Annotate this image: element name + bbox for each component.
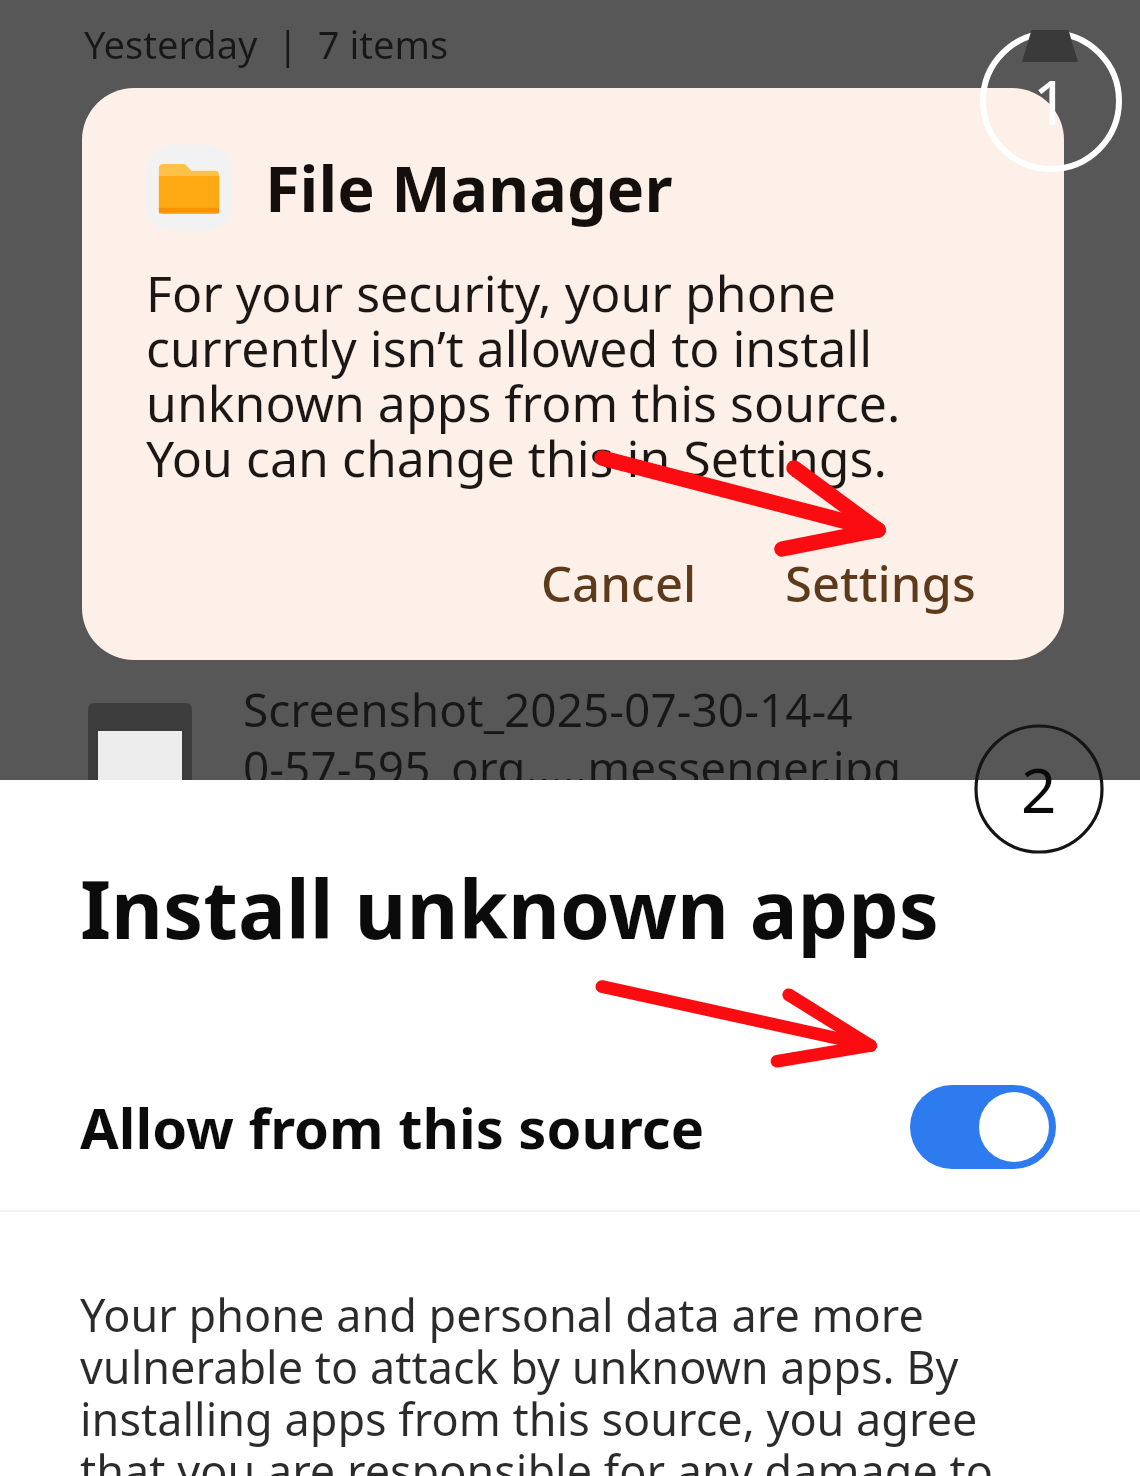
- button[interactable]: [88, 703, 192, 785]
- button[interactable]: Settings: [759, 538, 1002, 629]
- staticText: 0-57-595_org.....messenger.jpg: [243, 736, 902, 799]
- button[interactable]: Allow from this source toggle, on: [910, 1085, 1056, 1169]
- staticText: For your security, your phone currently …: [146, 259, 986, 492]
- staticText: Screenshot_2025-07-30-14-4: [243, 678, 853, 741]
- staticText: 1: [1033, 59, 1069, 143]
- button[interactable]: Allow from this source: [0, 1067, 1140, 1187]
- staticText: Settings: [785, 550, 976, 617]
- staticText: Install unknown apps: [80, 853, 939, 962]
- staticText: Your phone and personal data are more vu…: [80, 1284, 1062, 1476]
- staticText: Cancel: [541, 550, 697, 617]
- button[interactable]: Cancel: [515, 538, 723, 629]
- staticText: 2: [1021, 747, 1057, 831]
- staticText: Allow from this source: [80, 1089, 705, 1165]
- staticText: File Manager: [265, 145, 673, 231]
- staticText: Yesterday | 7 items: [84, 18, 449, 70]
